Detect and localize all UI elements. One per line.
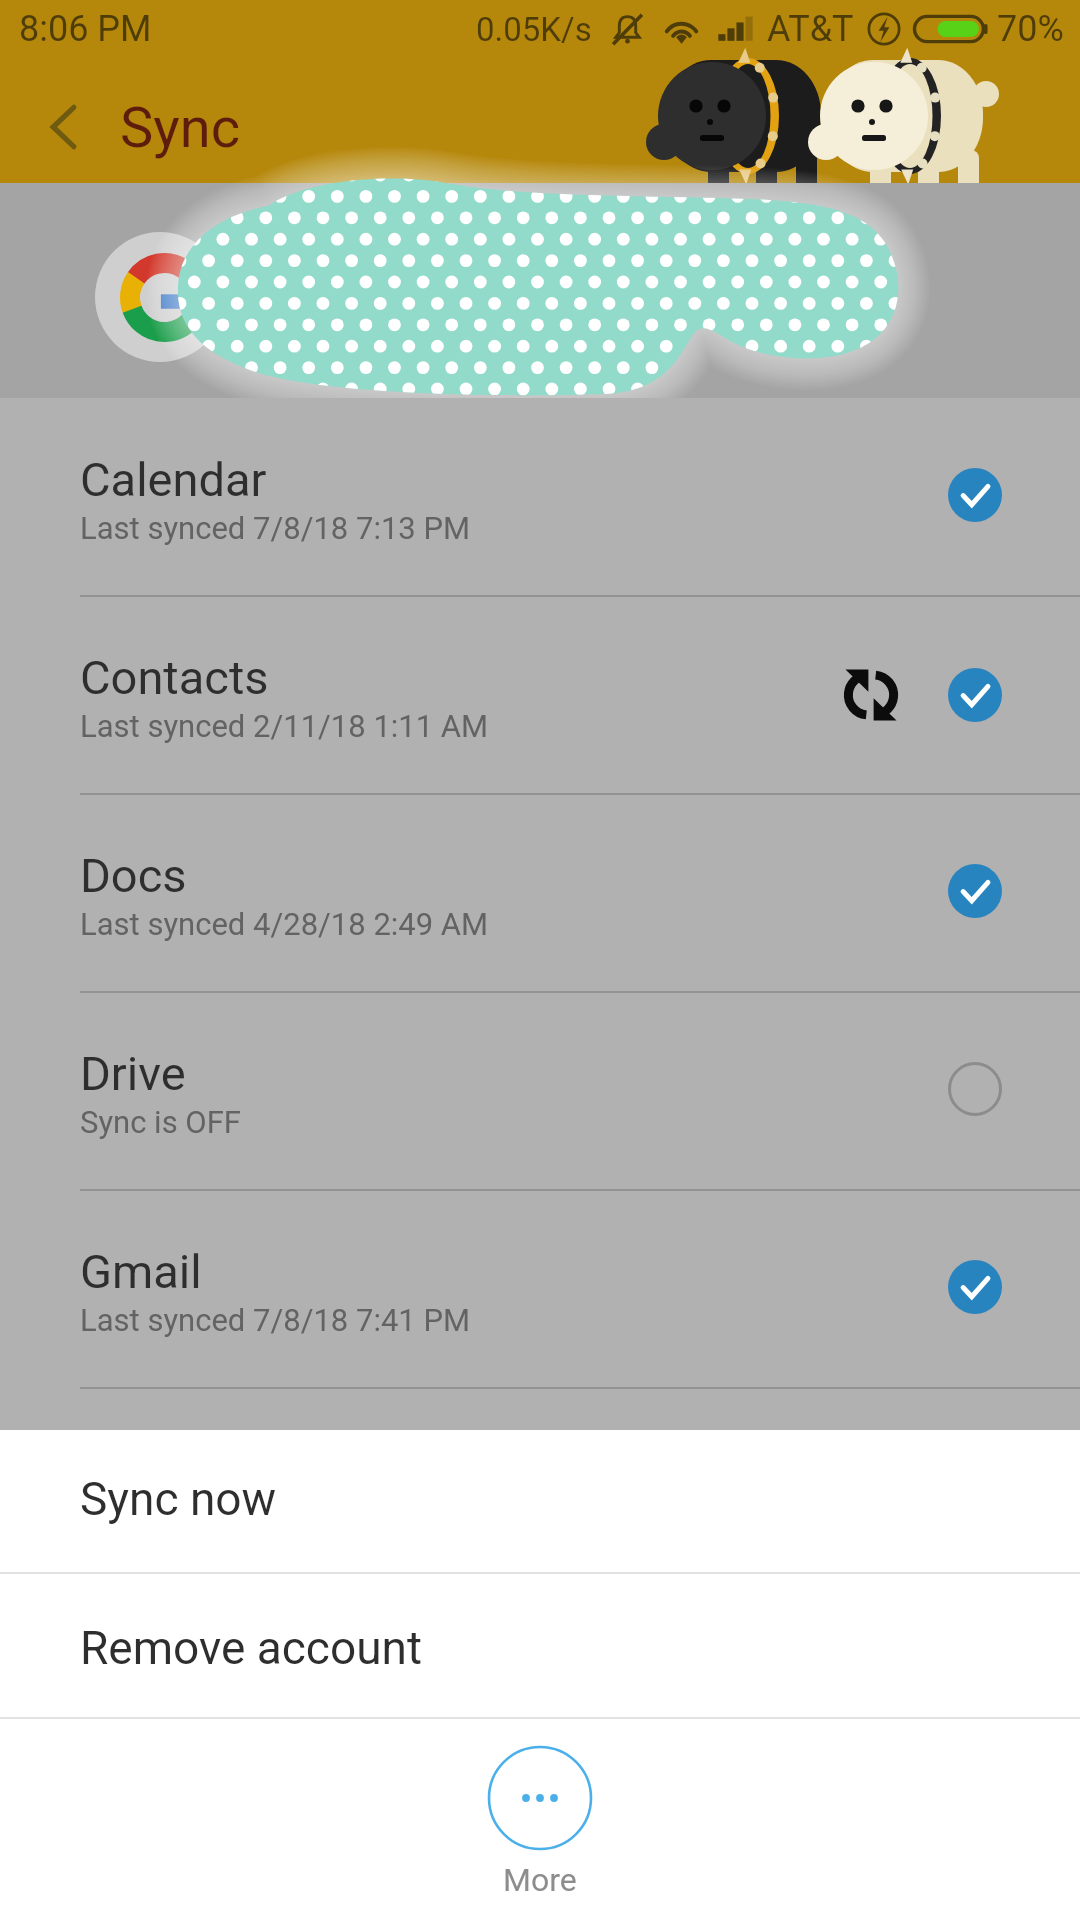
staticText: Last synced 4/28/18 2:49 AM	[80, 906, 489, 942]
button[interactable]: Back	[0, 58, 118, 183]
button[interactable]: Gmail	[0, 1190, 1080, 1430]
button[interactable]: Docs	[0, 794, 1080, 992]
staticText: Drive	[80, 1046, 186, 1101]
staticText: Gmail	[80, 1244, 202, 1299]
staticText: Sync now	[80, 1472, 277, 1526]
staticText: More	[503, 1861, 577, 1899]
staticText: Last synced 2/11/18 1:11 AM	[80, 708, 489, 744]
button[interactable]: Calendar	[0, 398, 1080, 596]
staticText: Last synced 7/8/18 7:41 PM	[80, 1302, 471, 1338]
staticText: Sync is OFF	[80, 1104, 241, 1140]
staticText: Calendar	[80, 452, 267, 507]
staticText: Sync	[120, 95, 240, 161]
staticText: Docs	[80, 848, 187, 903]
staticText: AT&T	[767, 8, 854, 50]
button[interactable]: Sync now	[0, 1430, 1080, 1574]
button[interactable]: Remove account	[0, 1574, 1080, 1719]
staticText: Contacts	[80, 650, 269, 705]
staticText: 8:06 PM	[19, 8, 152, 50]
button[interactable]: More	[487, 1719, 593, 1899]
button[interactable]: Drive	[0, 992, 1080, 1190]
button[interactable]: Contacts	[0, 596, 1080, 794]
staticText: 0.05K/s	[476, 10, 592, 49]
staticText: Remove account	[80, 1621, 422, 1675]
staticText: 70%	[997, 8, 1064, 50]
staticText: Last synced 7/8/18 7:13 PM	[80, 510, 471, 546]
